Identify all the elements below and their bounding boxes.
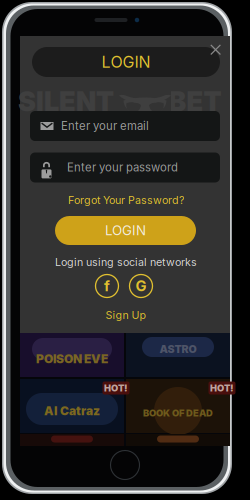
staticText: ASTRO [159, 342, 196, 355]
staticText: Sign Up [105, 308, 146, 321]
staticText: Enter your email [61, 119, 149, 133]
button[interactable]: Enter your password [30, 152, 220, 182]
staticText: Al Catraz [44, 404, 100, 418]
button[interactable]: Enter your email [30, 111, 220, 141]
button[interactable]: Forgot Your Password? [31, 192, 221, 208]
staticText: Enter your password [67, 161, 178, 174]
staticText: HOT! [104, 382, 128, 394]
staticText: HOT! [210, 382, 234, 394]
staticText: POISON EVE [36, 352, 108, 366]
staticText: LOGIN [105, 222, 146, 238]
button[interactable]: Sign Up [96, 308, 156, 322]
staticText: BOOK OF DEAD [143, 407, 213, 419]
staticText: f [104, 277, 110, 295]
staticText: G [135, 277, 146, 295]
staticText: LOGIN [101, 52, 150, 72]
button[interactable]: LOGIN [55, 216, 196, 245]
staticText: Forgot Your Password? [68, 193, 184, 206]
button[interactable]: Close [205, 39, 226, 60]
button[interactable]: Sign in with Google [129, 274, 152, 297]
button[interactable]: Sign in with Facebook [95, 274, 118, 297]
staticText: BET [168, 85, 221, 118]
staticText: Login using social networks [55, 255, 197, 268]
staticText: SILENT [18, 85, 114, 118]
